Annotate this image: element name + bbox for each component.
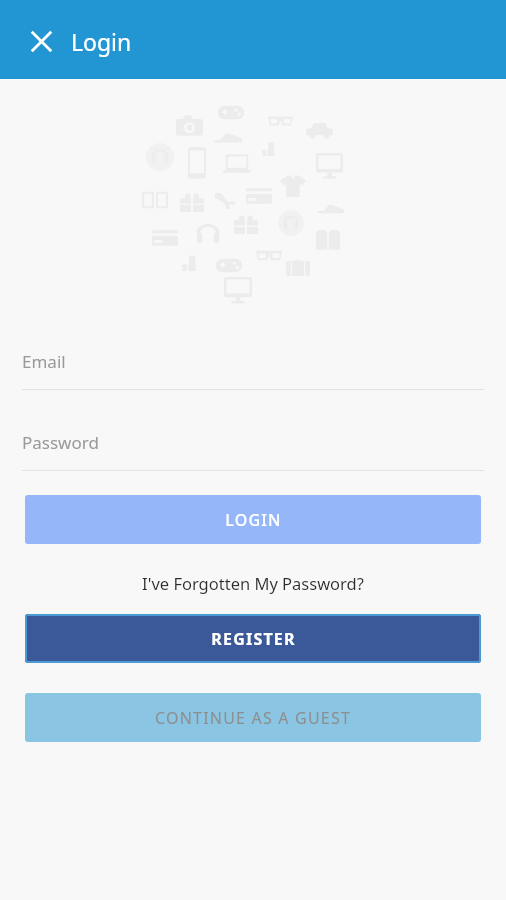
staticText: Password [22,431,99,454]
button[interactable]: REGISTER [25,614,481,663]
staticText: Login [71,26,132,57]
staticText: Email [22,350,66,373]
staticText: LOGIN [225,509,282,531]
button[interactable]: Password [0,431,506,471]
button[interactable]: CONTINUE AS A GUEST [25,693,481,742]
button[interactable]: I've Forgotten My Password? [0,566,506,600]
button[interactable]: Close [17,17,65,65]
button[interactable]: Email [0,350,506,390]
button[interactable]: LOGIN [25,495,481,544]
staticText: CONTINUE AS A GUEST [155,707,351,729]
staticText: I've Forgotten My Password? [142,572,364,594]
staticText: REGISTER [211,628,296,650]
